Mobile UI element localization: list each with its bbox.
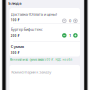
staticText: 1: [69, 33, 71, 38]
staticText: Комментарий к заказу: [11, 69, 51, 75]
button[interactable]: Минимальная сумма заказа 500 ₽. НДС не о…: [10, 58, 73, 61]
button[interactable]: Добавить Доставка: [73, 19, 78, 23]
staticText: Минимальная сумма заказа 500 ₽. НДС не о…: [10, 58, 73, 61]
button[interactable]: Комментарий к заказу: [9, 65, 80, 90]
staticText: 100 ₽: [11, 18, 20, 22]
staticText: 300 ₽: [11, 51, 20, 55]
button[interactable]: Убавить Доставка: [62, 19, 66, 23]
staticText: Бургер Бифштекс: [11, 27, 43, 32]
staticText: Доставка (Оплата и цены): [11, 12, 57, 17]
staticText: Сумма: [11, 44, 24, 49]
staticText: 0: [69, 18, 71, 23]
staticText: 200 ₽: [11, 34, 20, 38]
button[interactable]: Убавить Бургер Бифштекс: [62, 33, 66, 38]
button[interactable]: Добавить Бургер Бифштекс: [73, 33, 78, 38]
staticText: Блюда: [8, 1, 21, 6]
